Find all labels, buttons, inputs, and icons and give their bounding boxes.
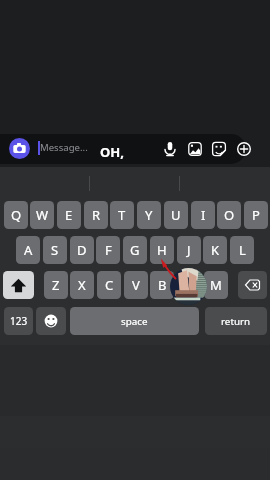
staticText: D [77, 241, 87, 259]
button[interactable]: Stickers [210, 140, 228, 158]
button[interactable]: Y [137, 201, 161, 229]
button[interactable]: V [124, 271, 148, 299]
button[interactable]: B [150, 271, 174, 299]
staticText: return [221, 315, 251, 328]
button[interactable]: Add [235, 140, 253, 158]
staticText: L [239, 241, 246, 259]
button[interactable]: F [96, 236, 120, 264]
button[interactable]: P [244, 201, 268, 229]
button[interactable]: N [177, 271, 201, 299]
staticText: C [105, 276, 114, 294]
staticText: Q [11, 206, 22, 224]
staticText: M [210, 276, 222, 294]
staticText: Message... [40, 141, 88, 154]
button[interactable]: space [70, 307, 199, 335]
button[interactable]: Photo sticker [170, 268, 207, 305]
button[interactable]: Voice message [161, 140, 179, 158]
button[interactable]: L [230, 236, 254, 264]
button[interactable]: W [30, 201, 54, 229]
staticText: G [130, 241, 140, 259]
button[interactable]: X [70, 271, 94, 299]
button[interactable]: S [43, 236, 67, 264]
staticText: W [36, 206, 49, 224]
staticText: E [65, 206, 73, 224]
button[interactable]: O [217, 201, 241, 229]
button[interactable]: A [16, 236, 40, 264]
staticText: 123 [10, 314, 28, 328]
staticText: O [224, 206, 235, 224]
staticText: H [157, 241, 167, 259]
button[interactable]: Gallery [186, 140, 204, 158]
staticText: F [105, 241, 112, 259]
button[interactable] [0, 134, 246, 164]
button[interactable]: Camera [9, 138, 30, 159]
staticText: P [252, 206, 260, 224]
staticText: K [211, 241, 220, 259]
button[interactable]: I [191, 201, 215, 229]
button[interactable]: U [164, 201, 188, 229]
button[interactable]: Z [44, 271, 68, 299]
staticText: I [201, 206, 206, 224]
staticText: J [187, 241, 191, 259]
button[interactable]: Backspace [238, 271, 267, 299]
button[interactable]: K [203, 236, 227, 264]
button[interactable]: Q [4, 201, 28, 229]
staticText: V [132, 276, 140, 294]
button[interactable]: return [205, 307, 267, 335]
button[interactable]: J [177, 236, 201, 264]
button[interactable]: 123 [4, 307, 33, 335]
staticText: T [118, 206, 126, 224]
button[interactable]: H [150, 236, 174, 264]
button[interactable]: G [123, 236, 147, 264]
staticText: Y [145, 206, 153, 224]
staticText: R [92, 206, 101, 224]
button[interactable]: Emoji [36, 307, 66, 335]
staticText: space [121, 315, 148, 328]
button[interactable]: Shift [3, 271, 34, 299]
staticText: B [158, 276, 167, 294]
staticText: N [184, 276, 194, 294]
staticText: S [51, 241, 59, 259]
staticText: X [78, 276, 86, 294]
button[interactable]: R [84, 201, 108, 229]
button[interactable]: E [57, 201, 81, 229]
staticText: OH, [100, 143, 124, 161]
button[interactable]: C [97, 271, 121, 299]
button[interactable]: T [110, 201, 134, 229]
staticText: A [24, 241, 33, 259]
staticText: U [171, 206, 181, 224]
button[interactable]: M [204, 271, 228, 299]
button[interactable]: D [70, 236, 94, 264]
staticText: Z [52, 276, 60, 294]
